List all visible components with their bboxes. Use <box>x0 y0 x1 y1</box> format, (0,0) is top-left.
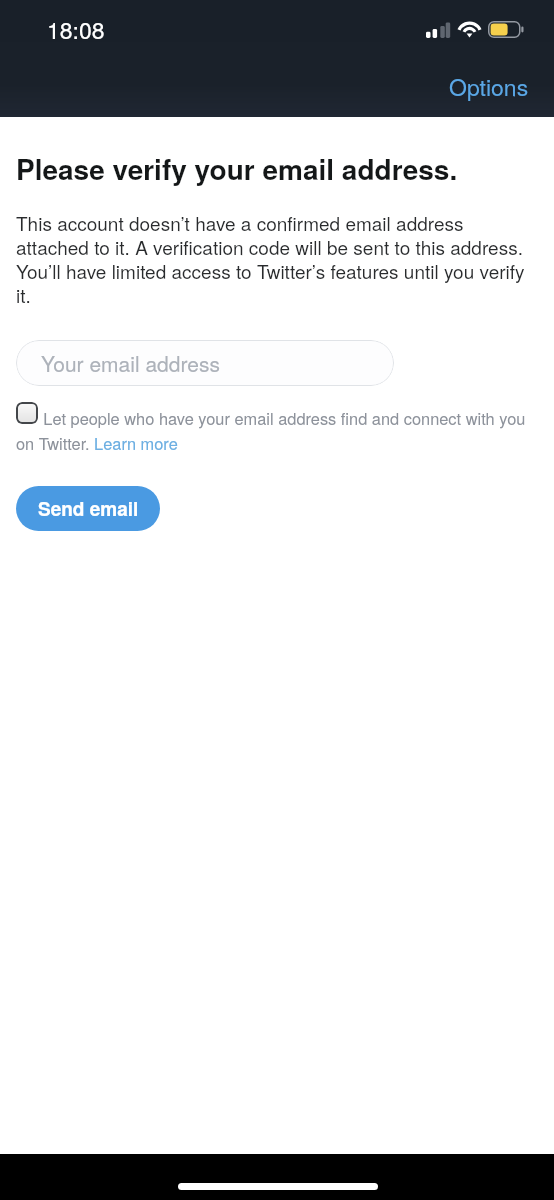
staticText: Your email address <box>41 348 220 378</box>
button[interactable]: Options <box>421 62 554 111</box>
staticText: Please verify your email address. <box>16 148 458 188</box>
staticText: Send email <box>38 495 139 522</box>
staticText: Options <box>449 70 529 103</box>
button[interactable]: Your email address <box>16 340 394 386</box>
button[interactable]: Send email <box>16 486 160 531</box>
button[interactable]: Let people find me by email <box>16 402 38 424</box>
staticText: This account doesn’t have a confirmed em… <box>16 209 532 309</box>
staticText: 18:08 <box>47 13 105 46</box>
staticText: Let people who have your email address f… <box>16 406 538 455</box>
